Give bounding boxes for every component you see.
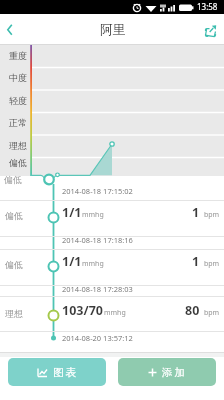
staticText: 阿里 (100, 22, 125, 38)
staticText: mmhg (82, 210, 104, 220)
staticText: 理想 (5, 308, 23, 319)
staticText: 80 (185, 302, 200, 319)
staticText: 添加 (161, 366, 186, 379)
staticText: 偏低 (5, 210, 23, 221)
button[interactable] (0, 331, 224, 346)
button[interactable] (0, 285, 224, 298)
staticText: 图表 (52, 366, 77, 379)
staticText: bpm (204, 210, 220, 220)
staticText: 13:58 (197, 1, 218, 12)
staticText: 2014-08-18 17:18:16 (62, 235, 133, 245)
staticText: 理想 (9, 140, 27, 151)
staticText: 偏低 (5, 259, 23, 270)
button[interactable]: 图表 (8, 358, 106, 386)
staticText: 1/1 (62, 204, 82, 221)
staticText: 1 (192, 204, 200, 221)
staticText: 1/1 (62, 253, 82, 270)
staticText: 中度 (9, 72, 27, 83)
staticText: 2014-08-20 13:57:12 (62, 333, 133, 343)
staticText: 轻度 (9, 95, 27, 106)
staticText: 正常 (9, 117, 27, 128)
staticText: 2014-08-18 17:28:03 (62, 284, 133, 294)
button[interactable] (0, 236, 224, 249)
staticText: 偏低 (4, 174, 22, 185)
staticText: bpm (204, 308, 220, 318)
button[interactable] (0, 200, 224, 236)
staticText: mmhg (104, 308, 126, 318)
staticText: 103/70 (62, 302, 103, 319)
staticText: bpm (204, 259, 220, 269)
staticText: mmhg (82, 259, 104, 269)
button[interactable]: 添加 (118, 358, 216, 386)
button[interactable] (0, 183, 224, 200)
button[interactable] (0, 14, 30, 45)
staticText: 2014-08-18 17:15:02 (62, 186, 133, 196)
staticText: 偏低 (9, 157, 27, 168)
button[interactable] (0, 296, 224, 331)
button[interactable] (194, 14, 224, 45)
staticText: 重度 (9, 50, 27, 61)
staticText: 1 (192, 253, 200, 270)
button[interactable] (0, 249, 224, 285)
